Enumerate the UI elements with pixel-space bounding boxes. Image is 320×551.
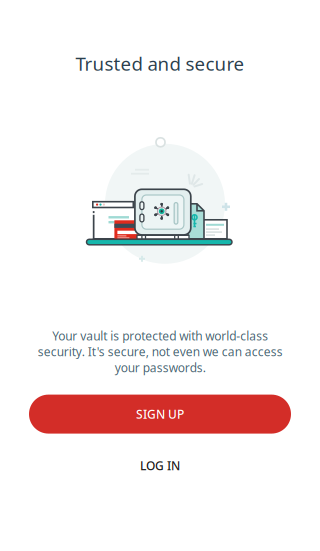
staticText: SIGN UP [136, 406, 184, 422]
button[interactable]: LOG IN [0, 453, 320, 479]
staticText: Trusted and secure [75, 51, 244, 76]
staticText: LOG IN [140, 458, 180, 473]
staticText: Your vault is protected with world-class… [37, 328, 282, 376]
button[interactable]: SIGN UP [29, 395, 291, 434]
